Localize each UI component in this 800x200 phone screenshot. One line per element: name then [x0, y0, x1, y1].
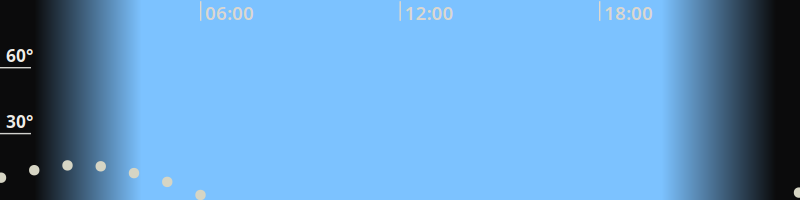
staticText: 06:00 — [205, 0, 254, 25]
staticText: 18:00 — [604, 0, 653, 25]
staticText: 12:00 — [404, 0, 453, 25]
staticText: 30° — [6, 110, 33, 133]
staticText: 60° — [6, 44, 33, 67]
